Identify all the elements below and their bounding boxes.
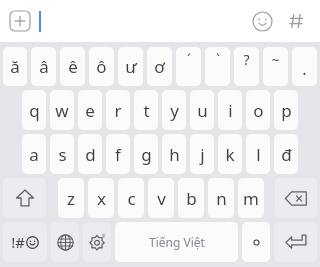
staticText: ư <box>125 55 137 78</box>
button[interactable]: . <box>292 47 317 86</box>
button[interactable]: k <box>218 134 242 174</box>
button[interactable]: o <box>246 90 270 130</box>
staticText: ô <box>96 55 107 78</box>
staticText: đ <box>281 143 292 166</box>
button[interactable]: p <box>274 90 298 130</box>
staticText: s <box>58 143 67 166</box>
button[interactable]: ê <box>60 47 85 86</box>
staticText: ê <box>68 55 78 78</box>
button[interactable]: v <box>148 178 174 218</box>
staticText: e <box>85 99 95 122</box>
button[interactable]: t <box>134 90 158 130</box>
button[interactable]: Settings <box>83 222 111 262</box>
staticText: d <box>85 143 96 166</box>
button[interactable]: j <box>190 134 214 174</box>
button[interactable]: z <box>58 178 84 218</box>
staticText: g <box>141 143 152 166</box>
button[interactable]: đ <box>274 134 298 174</box>
button[interactable]: Shift <box>3 178 46 218</box>
staticText: h <box>169 143 180 166</box>
button[interactable]: ô <box>89 47 114 86</box>
button[interactable]: Enter <box>274 222 317 262</box>
staticText: m <box>243 187 259 210</box>
button[interactable]: d <box>78 134 102 174</box>
button[interactable]: f <box>106 134 130 174</box>
staticText: p <box>281 99 292 122</box>
staticText: n <box>216 187 227 210</box>
button[interactable]: Add <box>9 10 31 32</box>
button[interactable]: l <box>246 134 270 174</box>
staticText: ` <box>216 50 220 69</box>
button[interactable]: ă <box>3 47 27 86</box>
button[interactable]: b <box>178 178 204 218</box>
button[interactable]: m <box>238 178 264 218</box>
button[interactable]: Period <box>242 222 270 262</box>
button[interactable]: Emoji <box>252 11 273 32</box>
button[interactable]: ư <box>118 47 143 86</box>
button[interactable]: i <box>218 90 242 130</box>
staticText: b <box>186 187 197 210</box>
button[interactable]: n <box>208 178 234 218</box>
button[interactable]: Space <box>115 222 238 262</box>
staticText: z <box>67 187 75 210</box>
button[interactable]: ` <box>205 47 230 86</box>
button[interactable]: e <box>78 90 102 130</box>
staticText: i <box>228 99 233 122</box>
button[interactable]: a <box>22 134 46 174</box>
staticText: u <box>197 99 208 122</box>
button[interactable]: Backspace <box>275 178 317 218</box>
button[interactable]: ? <box>234 47 259 86</box>
button[interactable]: x <box>88 178 114 218</box>
staticText: â <box>39 55 49 78</box>
staticText: ă <box>10 55 20 78</box>
button[interactable]: c <box>118 178 144 218</box>
staticText: v <box>157 187 166 210</box>
staticText: f <box>115 143 121 166</box>
button[interactable]: Hashtag <box>287 11 307 31</box>
staticText: k <box>225 143 235 166</box>
staticText: ơ <box>154 55 165 78</box>
button[interactable]: ´ <box>176 47 201 86</box>
staticText: c <box>127 187 136 210</box>
button[interactable]: ~ <box>263 47 288 86</box>
staticText: t <box>143 99 150 122</box>
staticText: q <box>29 99 40 122</box>
button[interactable]: Symbols <box>3 222 47 262</box>
staticText: x <box>97 187 106 210</box>
button[interactable]: h <box>162 134 186 174</box>
staticText: o <box>253 99 264 122</box>
staticText: !# <box>11 232 25 252</box>
staticText: w <box>55 99 69 122</box>
staticText: y <box>170 99 179 122</box>
staticText: . <box>302 58 307 80</box>
button[interactable]: q <box>22 90 46 130</box>
button[interactable]: y <box>162 90 186 130</box>
button[interactable]: r <box>106 90 130 130</box>
button[interactable]: g <box>134 134 158 174</box>
staticText: Tiếng Việt <box>149 234 205 250</box>
staticText: l <box>256 143 261 166</box>
button[interactable]: u <box>190 90 214 130</box>
staticText: j <box>200 143 205 166</box>
button[interactable]: â <box>31 47 56 86</box>
staticText: a <box>29 143 39 166</box>
staticText: ´ <box>187 50 191 69</box>
staticText: ? <box>243 50 250 69</box>
button[interactable]: w <box>50 90 74 130</box>
button[interactable]: ơ <box>147 47 172 86</box>
button[interactable]: Change language <box>51 222 79 262</box>
button[interactable]: s <box>50 134 74 174</box>
staticText: r <box>114 99 122 122</box>
staticText: ~ <box>271 50 280 69</box>
